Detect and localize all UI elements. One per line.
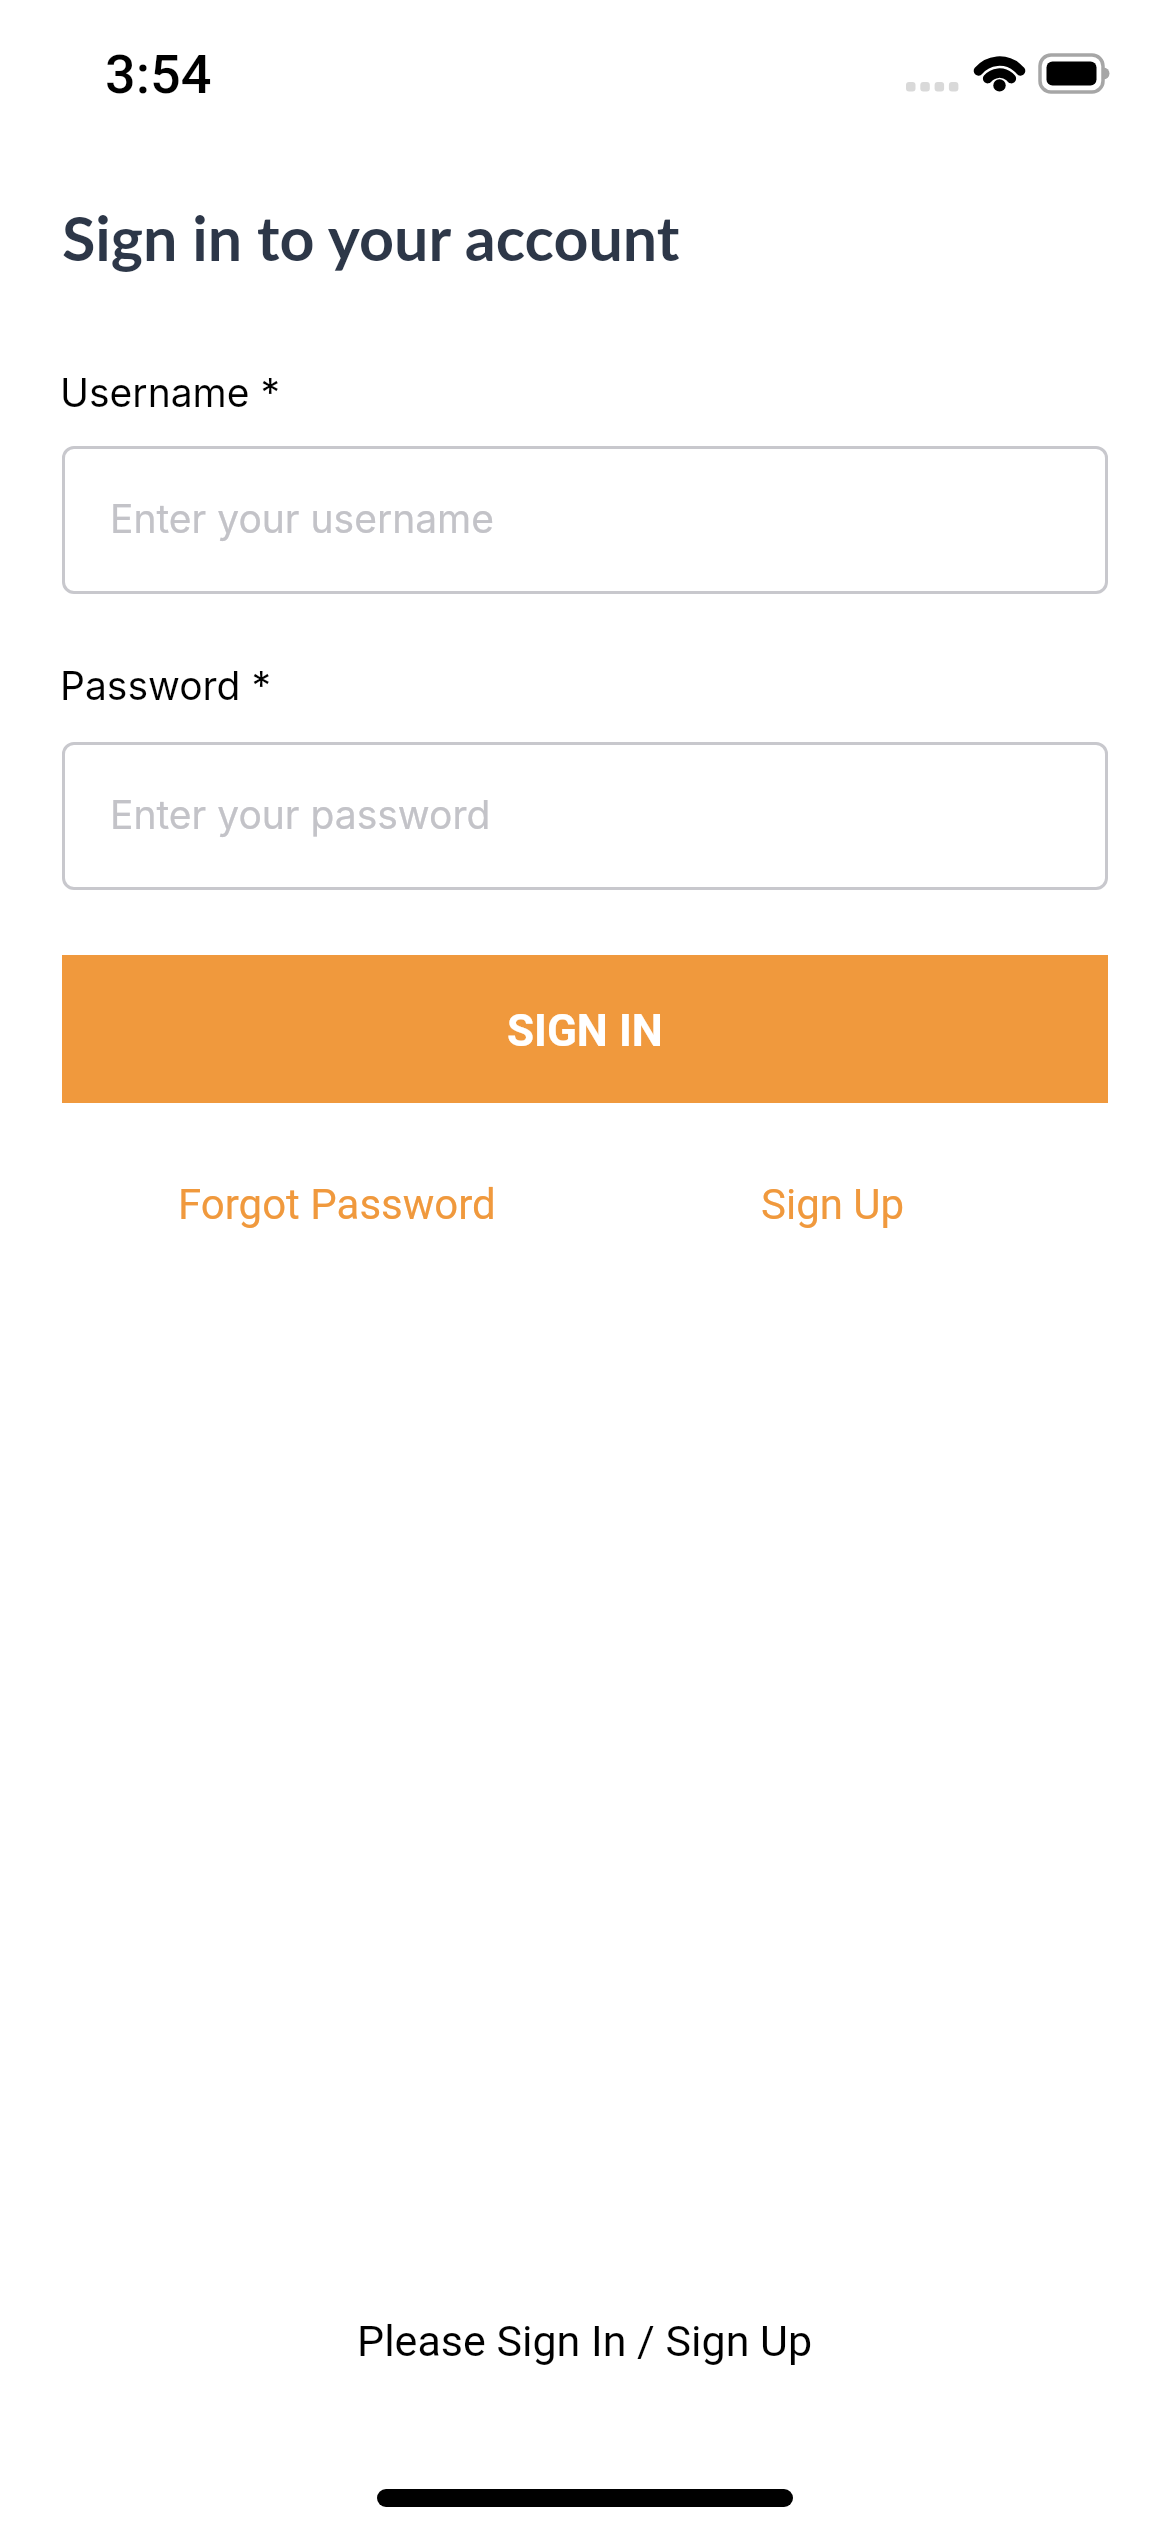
staticText: Username * bbox=[60, 369, 280, 416]
staticText: Password * bbox=[60, 662, 271, 709]
staticText: Sign in to your account bbox=[62, 201, 680, 274]
button[interactable]: Forgot Password bbox=[89, 1180, 585, 1229]
button[interactable] bbox=[62, 446, 1108, 594]
staticText: Enter your password bbox=[110, 791, 491, 838]
staticText: Forgot Password bbox=[178, 1180, 496, 1229]
button[interactable] bbox=[62, 742, 1108, 890]
staticText: Enter your username bbox=[110, 495, 495, 542]
staticText: Please Sign In / Sign Up bbox=[357, 2316, 813, 2366]
button[interactable]: Sign Up bbox=[585, 1180, 1081, 1229]
staticText: SIGN IN bbox=[507, 1005, 663, 1057]
staticText: 3:54 bbox=[105, 43, 212, 106]
staticText: Sign Up bbox=[761, 1180, 905, 1229]
button[interactable]: SIGN IN bbox=[62, 955, 1108, 1103]
